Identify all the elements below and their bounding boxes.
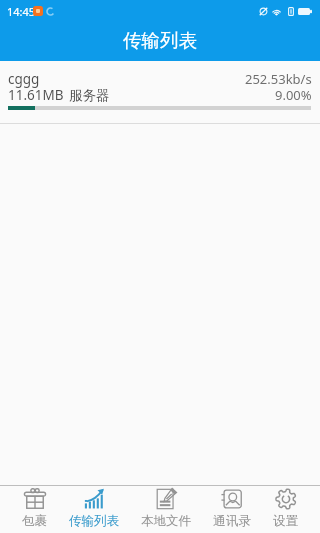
staticText: 服务器 xyxy=(69,87,110,104)
staticText: 14:45 xyxy=(7,4,36,19)
staticText: 传输列表 xyxy=(69,513,119,529)
button[interactable]: cggg xyxy=(0,61,320,114)
button[interactable]: 传输列表 xyxy=(69,486,119,533)
staticText: 11.61MB xyxy=(8,86,64,104)
staticText: 通讯录 xyxy=(213,513,251,529)
staticText: cggg xyxy=(8,70,40,88)
button[interactable]: 设置 xyxy=(273,486,298,533)
staticText: 包裹 xyxy=(22,513,47,529)
staticText: 本地文件 xyxy=(141,513,191,529)
staticText: 设置 xyxy=(273,513,298,529)
button[interactable]: 本地文件 xyxy=(141,486,191,533)
button[interactable]: 包裹 xyxy=(22,486,47,533)
staticText: 252.53kb/s xyxy=(245,70,312,88)
button[interactable]: 通讯录 xyxy=(213,486,251,533)
staticText: 传输列表 xyxy=(123,29,197,52)
staticText: 9.00% xyxy=(275,86,312,104)
